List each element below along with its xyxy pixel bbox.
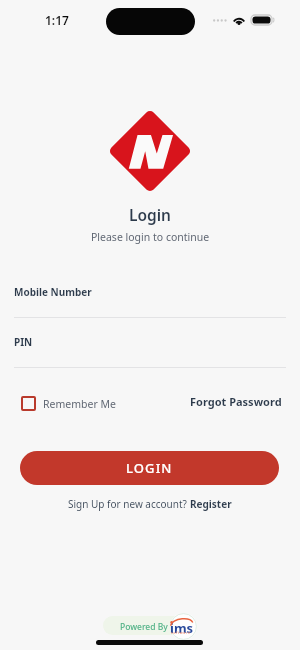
staticText: Forgot Password	[190, 394, 282, 409]
button[interactable]: Sign Up for new account?	[62, 494, 238, 514]
button[interactable]: Forgot Password	[184, 389, 288, 414]
staticText: PIN	[14, 335, 33, 349]
staticText: Remember Me	[43, 397, 116, 411]
staticText: Sign Up for new account?	[68, 497, 190, 511]
staticText: software	[171, 631, 191, 635]
staticText: ims	[170, 619, 194, 637]
staticText: 1:17	[45, 12, 69, 28]
staticText: Powered By	[120, 621, 168, 633]
staticText: Please login to continue	[91, 230, 210, 244]
button[interactable]: LOGIN	[20, 451, 279, 485]
staticText: Mobile Number	[14, 285, 92, 299]
staticText: Register	[190, 497, 232, 511]
staticText: LOGIN	[126, 459, 173, 477]
staticText: Login	[129, 204, 172, 225]
button[interactable]: Remember Me	[21, 396, 116, 411]
